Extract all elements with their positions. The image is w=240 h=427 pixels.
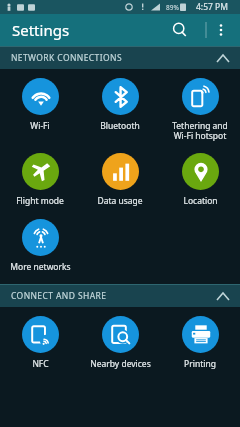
button[interactable]: NETWORK CONNECTIONS — [0, 47, 240, 69]
staticText: Data usage — [97, 195, 143, 207]
button[interactable]: Location — [160, 149, 240, 209]
button[interactable]: More options — [208, 17, 234, 43]
button[interactable]: Printing — [160, 312, 240, 372]
staticText: Location — [183, 195, 218, 207]
button[interactable]: CONNECT AND SHARE — [0, 285, 240, 307]
staticText: CONNECT AND SHARE — [11, 290, 107, 302]
button[interactable]: Data usage — [80, 149, 160, 209]
button[interactable]: More networks — [0, 215, 80, 275]
button[interactable]: Search — [165, 15, 195, 45]
staticText: Tethering and Wi-Fi hotspot — [172, 120, 228, 141]
button[interactable]: Tethering and Wi-Fi hotspot — [160, 74, 240, 143]
staticText: Nearby devices — [90, 358, 151, 370]
staticText: 4:57 PM — [196, 1, 228, 13]
staticText: Settings — [12, 20, 70, 40]
staticText: Printing — [184, 358, 216, 370]
staticText: Flight mode — [16, 195, 64, 207]
staticText: More networks — [10, 261, 71, 273]
staticText: Wi-Fi — [30, 120, 50, 132]
button[interactable]: Wi-Fi — [0, 74, 80, 134]
button[interactable]: NFC — [0, 312, 80, 372]
button[interactable]: Flight mode — [0, 149, 80, 209]
button[interactable]: Bluetooth — [80, 74, 160, 134]
button[interactable]: Nearby devices — [80, 312, 160, 372]
staticText: NETWORK CONNECTIONS — [11, 52, 122, 64]
staticText: 89% — [166, 3, 179, 12]
staticText: Bluetooth — [100, 120, 140, 132]
staticText: NFC — [32, 358, 49, 370]
